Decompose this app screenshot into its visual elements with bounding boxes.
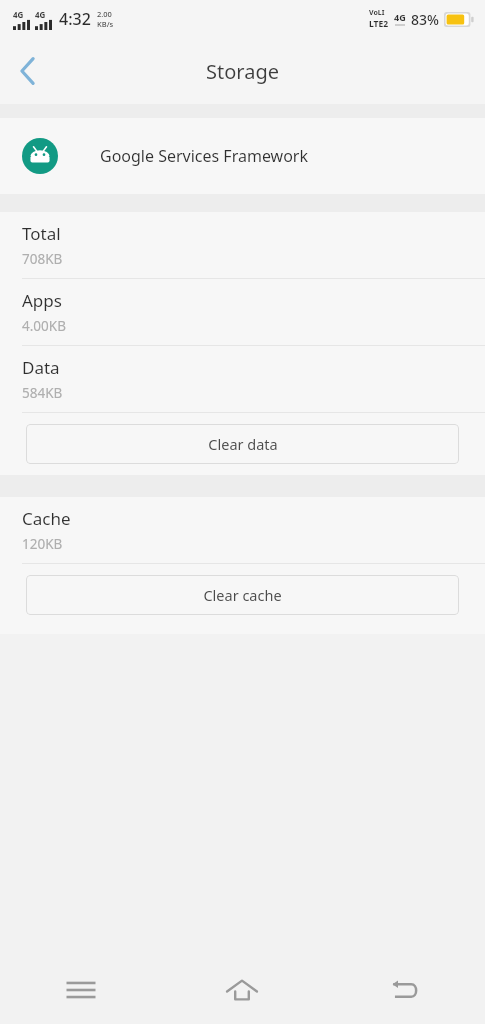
staticText: Cache bbox=[22, 507, 71, 530]
button[interactable]: Total bbox=[0, 212, 485, 278]
staticText: Apps bbox=[22, 289, 62, 312]
staticText: 120KB bbox=[22, 535, 63, 553]
staticText: 4.00KB bbox=[22, 317, 66, 335]
button[interactable]: Back bbox=[0, 43, 56, 99]
button[interactable]: Back bbox=[323, 955, 485, 1024]
staticText: 4:32 bbox=[59, 8, 91, 30]
staticText: Google Services Framework bbox=[100, 145, 309, 167]
staticText: Clear data bbox=[208, 434, 278, 454]
staticText: 2.00 bbox=[97, 9, 112, 19]
staticText: VoLI bbox=[369, 8, 385, 18]
staticText: Total bbox=[22, 222, 61, 245]
staticText: 4G bbox=[394, 11, 406, 23]
staticText: LTE2 bbox=[369, 18, 389, 30]
button[interactable]: Home bbox=[161, 955, 323, 1024]
staticText: Clear cache bbox=[203, 585, 282, 605]
button[interactable]: Clear data bbox=[26, 424, 459, 464]
button[interactable]: Recent apps bbox=[0, 955, 161, 1024]
button[interactable]: Apps bbox=[0, 279, 485, 345]
button[interactable]: Cache bbox=[0, 497, 485, 563]
staticText: 83% bbox=[411, 10, 439, 29]
staticText: 4G bbox=[35, 9, 46, 20]
staticText: 708KB bbox=[22, 250, 63, 268]
button[interactable]: Data bbox=[0, 346, 485, 412]
staticText: Storage bbox=[206, 58, 279, 85]
button[interactable]: Clear cache bbox=[26, 575, 459, 615]
staticText: 584KB bbox=[22, 384, 63, 402]
button[interactable]: Google Services Framework bbox=[0, 118, 485, 194]
staticText: Data bbox=[22, 356, 60, 379]
staticText: KB/s bbox=[97, 19, 114, 29]
staticText: 4G bbox=[13, 9, 24, 20]
